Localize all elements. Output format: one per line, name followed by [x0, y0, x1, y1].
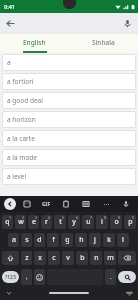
staticText: ?123	[5, 274, 16, 281]
button[interactable]: k	[103, 233, 115, 247]
button[interactable]: GIF	[38, 196, 54, 212]
button[interactable]: a	[8, 233, 19, 247]
staticText: y	[72, 217, 76, 227]
button[interactable]: z	[21, 251, 32, 265]
button[interactable]: n	[90, 251, 102, 265]
button[interactable]: Settings	[78, 196, 94, 212]
button[interactable]: Back	[0, 13, 21, 34]
button[interactable]: p	[124, 215, 136, 229]
button[interactable]: e	[28, 215, 39, 229]
staticText: d	[37, 235, 42, 245]
button[interactable]: a horizon	[2, 111, 136, 128]
staticText: 5	[62, 215, 65, 220]
button[interactable]: Search	[118, 271, 136, 283]
staticText: o	[114, 217, 119, 227]
button[interactable]: Sinhala	[69, 34, 138, 51]
staticText: q	[5, 217, 10, 227]
button[interactable]: a good deal	[2, 92, 136, 109]
staticText: f	[52, 235, 55, 245]
button[interactable]: r	[41, 215, 52, 229]
staticText: i	[101, 217, 103, 227]
staticText: Sinhala	[92, 38, 115, 47]
button[interactable]: g	[61, 233, 73, 247]
staticText: English	[23, 38, 46, 47]
staticText: a fortiori	[7, 77, 34, 86]
staticText: .	[110, 273, 112, 281]
button[interactable]: u	[82, 215, 94, 229]
staticText: 4	[48, 215, 51, 220]
staticText: 3	[35, 215, 38, 220]
button[interactable]: l	[117, 233, 129, 247]
button[interactable]: Stickers	[19, 196, 35, 212]
staticText: a	[7, 58, 11, 67]
staticText: a la mode	[7, 153, 38, 162]
button[interactable]: a level	[2, 168, 136, 185]
button[interactable]: Collapse toolbar	[4, 198, 16, 210]
button[interactable]: o	[110, 215, 122, 229]
button[interactable]: m	[104, 251, 116, 265]
staticText: t	[59, 217, 62, 227]
button[interactable]: c	[48, 251, 60, 265]
staticText: 9:41	[4, 3, 15, 10]
button[interactable]: q	[2, 215, 13, 229]
button[interactable]: Emoji	[34, 269, 45, 285]
button[interactable]: a	[2, 54, 136, 71]
staticText: GIF	[42, 201, 51, 208]
staticText: z	[25, 253, 29, 263]
button[interactable]: Backspace	[118, 251, 136, 265]
button[interactable]: English	[0, 34, 69, 51]
button[interactable]: t	[54, 215, 66, 229]
button[interactable]: Hide keyboard	[4, 286, 14, 300]
staticText: e	[32, 217, 36, 227]
button[interactable]: a la mode	[2, 149, 136, 166]
staticText: g	[65, 235, 70, 245]
staticText: 1	[9, 215, 12, 220]
button[interactable]: More options	[98, 196, 114, 212]
button[interactable]: Voice input	[118, 196, 134, 212]
button[interactable]: d	[34, 233, 45, 247]
button[interactable]: f	[47, 233, 59, 247]
staticText: h	[79, 235, 84, 245]
staticText: j	[94, 235, 96, 245]
button[interactable]: Shift	[2, 251, 19, 265]
staticText: 8	[104, 215, 107, 220]
button[interactable]: ,	[21, 269, 32, 285]
staticText: a good deal	[7, 96, 43, 105]
button[interactable]: b	[76, 251, 88, 265]
staticText: ,	[26, 273, 28, 281]
button[interactable]: Voice search	[117, 13, 138, 34]
button[interactable]: a la carte	[2, 130, 136, 147]
button[interactable]: y	[68, 215, 80, 229]
button[interactable]: x	[34, 251, 46, 265]
button[interactable]: j	[89, 233, 101, 247]
staticText: p	[128, 217, 133, 227]
button[interactable]: Symbols	[2, 271, 19, 283]
button[interactable]: Clipboard	[58, 196, 74, 212]
staticText: 0	[132, 215, 135, 220]
staticText: n	[94, 253, 99, 263]
button[interactable]: Close keyboard	[124, 286, 134, 300]
button[interactable]: h	[75, 233, 87, 247]
staticText: 9	[118, 215, 121, 220]
staticText: s	[25, 235, 29, 245]
staticText: c	[52, 253, 56, 263]
staticText: m	[107, 253, 114, 263]
button[interactable]: w	[15, 215, 26, 229]
button[interactable]: s	[21, 233, 32, 247]
staticText: 7	[90, 215, 93, 220]
staticText: w	[18, 217, 24, 227]
staticText: b	[80, 253, 85, 263]
staticText: l	[122, 235, 124, 245]
staticText: r	[45, 217, 48, 227]
staticText: v	[66, 253, 70, 263]
staticText: a la carte	[7, 134, 35, 143]
button[interactable]: .	[105, 269, 116, 285]
button[interactable]: i	[96, 215, 108, 229]
button[interactable]: v	[62, 251, 74, 265]
staticText: x	[38, 253, 42, 263]
button[interactable]: a fortiori	[2, 73, 136, 90]
staticText: k	[107, 235, 111, 245]
staticText: 6	[76, 215, 79, 220]
staticText: a level	[7, 172, 27, 181]
